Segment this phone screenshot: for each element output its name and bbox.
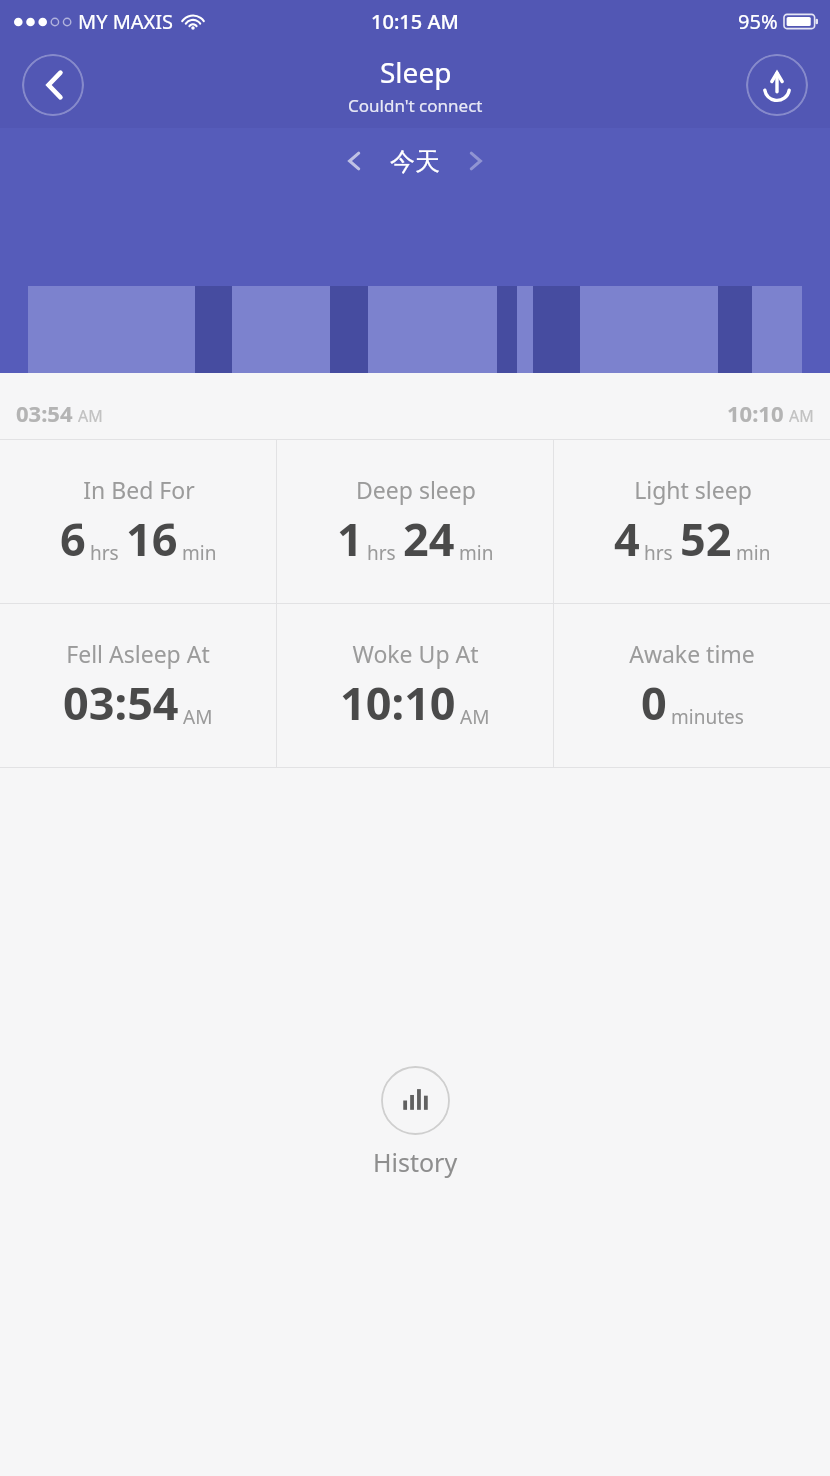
staticText: Couldn't connect <box>348 94 483 117</box>
staticText: AM <box>183 704 213 730</box>
staticText: 4 <box>614 508 640 569</box>
staticText: In Bed For <box>83 474 195 505</box>
staticText: 10:10 <box>727 398 784 428</box>
staticText: min <box>182 540 217 566</box>
staticText: hrs <box>367 540 396 566</box>
staticText: min <box>459 540 494 566</box>
staticText: 16 <box>126 508 178 569</box>
staticText: min <box>736 540 771 566</box>
staticText: 52 <box>680 508 732 569</box>
button[interactable]: Previous day <box>330 138 376 184</box>
staticText: 95% <box>738 8 778 35</box>
staticText: Woke Up At <box>352 638 479 669</box>
staticText: Fell Asleep At <box>66 638 210 669</box>
button[interactable]: Back <box>22 54 84 116</box>
button[interactable]: In Bed For <box>0 440 276 603</box>
staticText: AM <box>789 405 814 427</box>
button[interactable]: 今天 <box>390 146 440 177</box>
staticText: 10:15 AM <box>371 8 459 35</box>
button[interactable]: Deep sleep <box>277 440 553 603</box>
button[interactable]: Light sleep <box>554 440 830 603</box>
staticText: AM <box>78 405 103 427</box>
button[interactable]: Awake time <box>554 604 830 767</box>
staticText: hrs <box>90 540 119 566</box>
staticText: 24 <box>403 508 455 569</box>
staticText: Sleep <box>380 53 452 91</box>
staticText: 10:10 <box>340 672 456 733</box>
staticText: 0 <box>641 672 667 733</box>
staticText: 03:54 <box>16 398 73 428</box>
button[interactable]: Next day <box>454 138 500 184</box>
staticText: AM <box>460 704 490 730</box>
button[interactable]: History <box>355 1060 476 1185</box>
staticText: History <box>373 1145 458 1179</box>
button[interactable]: Share <box>746 54 808 116</box>
staticText: 1 <box>337 508 363 569</box>
button[interactable]: Fell Asleep At <box>0 604 276 767</box>
staticText: 6 <box>60 508 86 569</box>
staticText: minutes <box>671 704 744 730</box>
staticText: hrs <box>644 540 673 566</box>
button[interactable]: Woke Up At <box>277 604 553 767</box>
staticText: 03:54 <box>63 672 179 733</box>
staticText: Awake time <box>629 638 755 669</box>
staticText: Light sleep <box>634 474 752 505</box>
staticText: MY MAXIS <box>78 8 174 35</box>
staticText: Deep sleep <box>356 474 476 505</box>
